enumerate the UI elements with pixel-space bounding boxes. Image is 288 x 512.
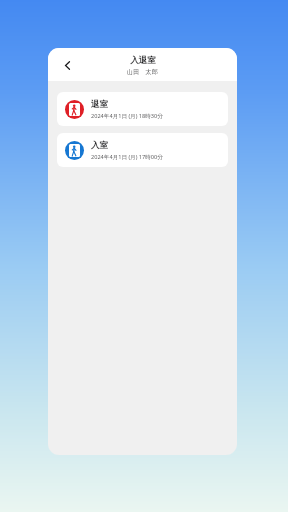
button[interactable]: 退室 <box>57 92 228 126</box>
staticText: 2024年4月1日 (月) 17時00分 <box>91 153 163 161</box>
button[interactable]: 入室 <box>57 133 228 167</box>
staticText: 入室 <box>91 140 108 151</box>
button[interactable]: 戻る <box>57 55 77 75</box>
staticText: 退室 <box>91 99 108 110</box>
staticText: 2024年4月1日 (月) 18時30分 <box>91 112 163 120</box>
staticText: 山田 太郎 <box>127 67 158 75</box>
staticText: 入退室 <box>130 55 156 66</box>
